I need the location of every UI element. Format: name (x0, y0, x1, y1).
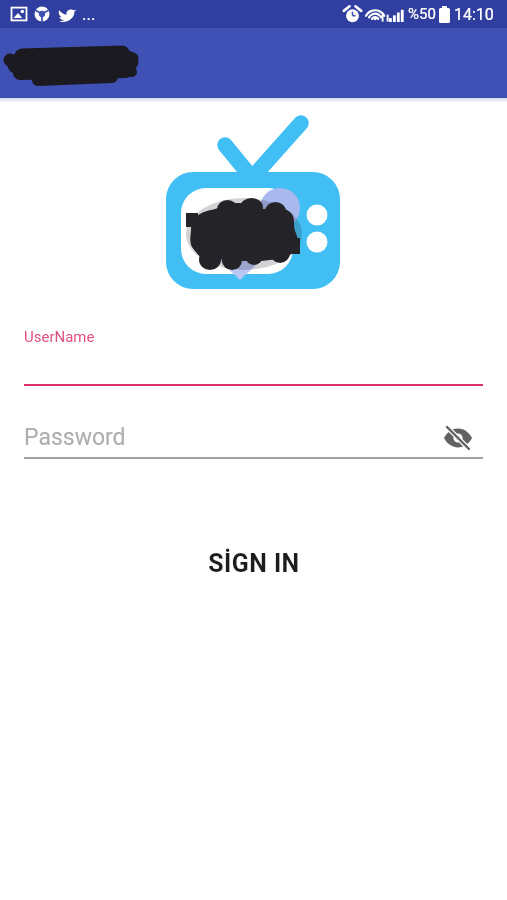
button[interactable]: Toggle password visibility (438, 418, 478, 458)
button[interactable]: Password (0, 400, 507, 462)
button[interactable]: UserName (0, 318, 507, 388)
staticText: Password (24, 424, 126, 451)
staticText: UserName (24, 328, 95, 346)
staticText: 14:10 (454, 5, 494, 24)
staticText: ... (82, 4, 96, 24)
staticText: SİGN IN (208, 549, 300, 578)
button[interactable]: SİGN IN (0, 533, 507, 593)
staticText: %50 (408, 5, 436, 23)
